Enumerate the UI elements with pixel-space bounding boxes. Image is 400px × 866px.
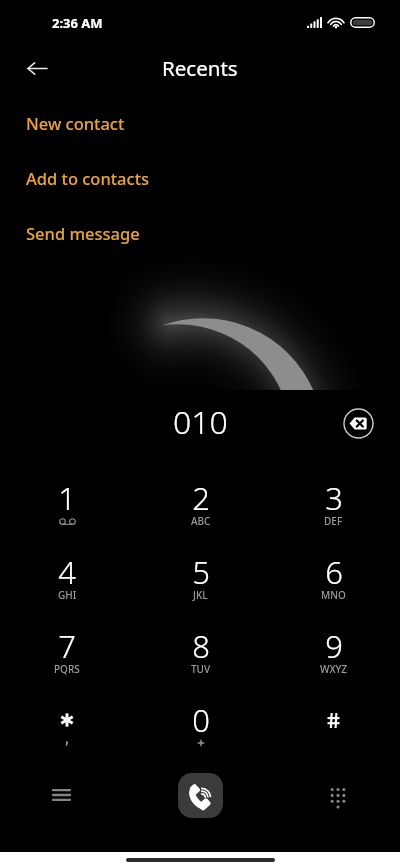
button[interactable]: Back: [17, 48, 57, 88]
staticText: TUV: [191, 662, 211, 676]
staticText: PQRS: [54, 662, 80, 676]
staticText: DEF: [324, 514, 343, 528]
button[interactable]: Backspace: [342, 407, 374, 439]
button[interactable]: 3: [267, 465, 400, 539]
button[interactable]: [0, 687, 134, 761]
button[interactable]: 5: [134, 539, 267, 613]
staticText: 0: [192, 699, 210, 741]
staticText: 1: [58, 477, 76, 519]
button[interactable]: [267, 687, 400, 761]
button[interactable]: 4: [0, 539, 134, 613]
button[interactable]: 7: [0, 613, 134, 687]
staticText: GHI: [58, 588, 77, 602]
staticText: 9: [325, 625, 343, 667]
button[interactable]: Add to contacts: [0, 145, 400, 200]
staticText: Add to contacts: [26, 167, 149, 189]
staticText: 010: [173, 400, 228, 444]
button[interactable]: 1: [0, 465, 134, 539]
button[interactable]: Dialpad: [318, 775, 358, 815]
staticText: MNO: [321, 588, 346, 602]
staticText: 5: [192, 551, 210, 593]
staticText: 4: [58, 551, 76, 593]
button[interactable]: Send message: [0, 200, 400, 255]
staticText: 2: [192, 477, 210, 519]
button[interactable]: 8: [134, 613, 267, 687]
staticText: WXYZ: [320, 662, 348, 676]
button[interactable]: Call log: [41, 775, 81, 815]
staticText: Recents: [162, 54, 238, 82]
button[interactable]: 2: [134, 465, 267, 539]
button[interactable]: 6: [267, 539, 400, 613]
button[interactable]: 0: [134, 687, 267, 761]
staticText: 8: [192, 625, 210, 667]
staticText: JKL: [193, 588, 208, 602]
staticText: New contact: [26, 112, 125, 134]
staticText: 3: [325, 477, 343, 519]
button[interactable]: 9: [267, 613, 400, 687]
staticText: ABC: [191, 514, 211, 528]
button[interactable]: New contact: [0, 90, 400, 145]
button[interactable]: Call: [178, 773, 223, 818]
staticText: 2:36 AM: [52, 14, 103, 32]
staticText: Send message: [26, 222, 140, 244]
staticText: 6: [325, 551, 343, 593]
staticText: 7: [58, 625, 76, 667]
